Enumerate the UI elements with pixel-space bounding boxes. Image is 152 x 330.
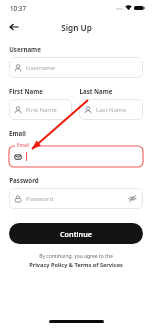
button[interactable]: Password	[9, 188, 143, 209]
staticText: Privacy Policy & Terms of Services	[29, 261, 123, 269]
button[interactable]	[9, 146, 143, 167]
button[interactable]: Last Name	[79, 99, 143, 120]
button[interactable]: Back	[5, 18, 23, 36]
staticText: Password	[9, 176, 39, 184]
staticText: Email	[17, 142, 30, 148]
button[interactable]: Username	[9, 57, 143, 78]
button[interactable]: First Name	[9, 99, 72, 120]
staticText: Username	[9, 45, 41, 53]
staticText: Email	[9, 129, 26, 137]
button[interactable]: Show password	[127, 193, 138, 204]
staticText: First Name	[26, 106, 57, 114]
staticText: Username	[26, 64, 56, 72]
staticText: Password	[26, 195, 54, 203]
staticText: First Name	[9, 87, 43, 95]
staticText: 10:37	[10, 4, 26, 12]
staticText: Continue	[60, 229, 92, 239]
staticText: Sign Up	[61, 22, 92, 33]
staticText: By continuing, you agree to the	[39, 253, 113, 260]
staticText: Last Name	[79, 87, 113, 95]
staticText: Last Name	[96, 106, 127, 114]
button[interactable]: Continue	[9, 223, 143, 244]
